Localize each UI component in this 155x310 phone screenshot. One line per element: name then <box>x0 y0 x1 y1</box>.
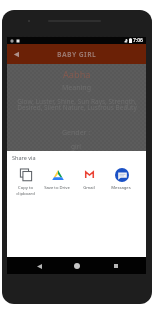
staticText: Messages <box>111 185 131 191</box>
staticText: 7:06 <box>133 37 143 44</box>
staticText: Save to Drive <box>44 185 70 191</box>
button[interactable]: Save to Drive <box>41 167 73 191</box>
staticText: Share via <box>12 154 36 161</box>
button[interactable]: Home <box>69 258 85 274</box>
button[interactable]: Recents <box>108 258 124 274</box>
staticText: Gmail <box>83 185 95 191</box>
button[interactable]: Gmail <box>73 167 105 191</box>
staticText: Glow, Luster, Shine, Sun Rays, Strength,… <box>17 97 137 112</box>
staticText: Copy to clipboard <box>16 185 35 196</box>
staticText: BABY GIRL <box>57 50 97 59</box>
staticText: girl <box>71 142 82 151</box>
button[interactable]: Back <box>31 258 47 274</box>
button[interactable]: Copy to clipboard <box>9 167 41 196</box>
staticText: Meaning <box>62 83 91 93</box>
staticText: Aabha <box>63 68 91 81</box>
staticText: Gender : <box>62 128 91 138</box>
button[interactable]: Back <box>9 47 23 61</box>
button[interactable]: Messages <box>105 167 137 191</box>
